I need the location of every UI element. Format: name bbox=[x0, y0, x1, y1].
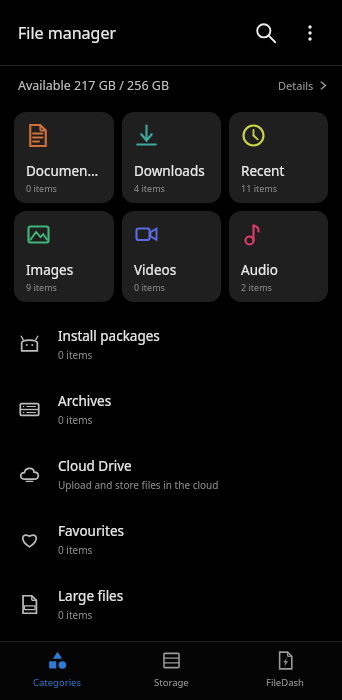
button[interactable]: Documen… bbox=[14, 112, 114, 203]
staticText: 0 items bbox=[58, 348, 93, 362]
staticText: Videos bbox=[134, 261, 177, 279]
staticText: Large files bbox=[58, 587, 124, 605]
button[interactable]: Archives bbox=[0, 377, 342, 442]
staticText: Downloads bbox=[134, 162, 205, 180]
button[interactable]: Large files bbox=[0, 572, 342, 637]
staticText: Categories bbox=[33, 676, 81, 689]
staticText: Documen… bbox=[26, 162, 99, 180]
staticText: Storage bbox=[154, 676, 189, 689]
button[interactable]: Available 217 GB / 256 GB bbox=[0, 66, 342, 104]
staticText: Details bbox=[278, 78, 314, 93]
button[interactable]: Cloud Drive bbox=[0, 442, 342, 507]
staticText: FileDash bbox=[266, 676, 304, 689]
button[interactable]: FileDash bbox=[228, 642, 342, 700]
staticText: 0 items bbox=[26, 182, 57, 194]
staticText: Archives bbox=[58, 392, 112, 410]
staticText: Available 217 GB / 256 GB bbox=[18, 77, 170, 94]
button[interactable]: Recent bbox=[229, 112, 328, 203]
staticText: Audio bbox=[241, 261, 278, 279]
button[interactable]: Images bbox=[14, 211, 114, 302]
staticText: Upload and store files in the cloud bbox=[58, 478, 219, 492]
button[interactable]: More options bbox=[288, 11, 332, 55]
button[interactable]: Search bbox=[244, 11, 288, 55]
button[interactable]: Favourites bbox=[0, 507, 342, 572]
button[interactable]: Audio bbox=[229, 211, 328, 302]
staticText: 11 items bbox=[241, 182, 278, 194]
staticText: 4 items bbox=[134, 182, 165, 194]
staticText: 9 items bbox=[26, 281, 57, 293]
staticText: 2 items bbox=[241, 281, 272, 293]
button[interactable]: Videos bbox=[122, 211, 221, 302]
staticText: Cloud Drive bbox=[58, 457, 132, 475]
button[interactable]: Downloads bbox=[122, 112, 221, 203]
staticText: Install packages bbox=[58, 327, 160, 345]
staticText: Recent bbox=[241, 162, 285, 180]
staticText: 0 items bbox=[58, 413, 93, 427]
button[interactable]: Install packages bbox=[0, 312, 342, 377]
button[interactable]: Storage bbox=[114, 642, 228, 700]
staticText: 0 items bbox=[134, 281, 165, 293]
button[interactable]: Categories bbox=[0, 642, 114, 700]
staticText: 0 items bbox=[58, 543, 93, 557]
staticText: Images bbox=[26, 261, 74, 279]
staticText: Favourites bbox=[58, 522, 124, 540]
staticText: File manager bbox=[18, 22, 117, 44]
staticText: 0 items bbox=[58, 608, 93, 622]
